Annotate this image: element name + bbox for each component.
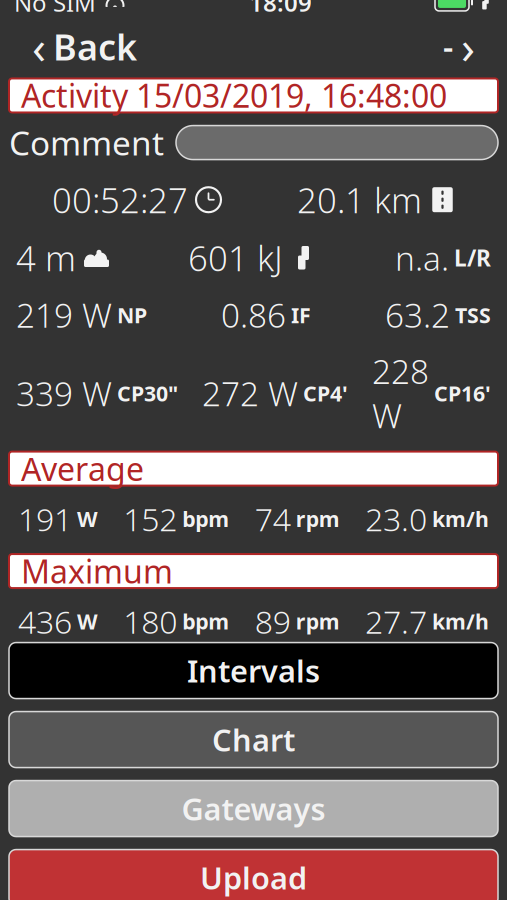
- staticText: ‹: [32, 16, 46, 76]
- staticText: 18:09: [249, 0, 312, 18]
- staticText: 74: [255, 498, 291, 540]
- staticText: 0.86: [221, 293, 286, 337]
- staticText: 27.7: [365, 600, 427, 643]
- staticText: Chart: [212, 719, 295, 760]
- staticText: 180: [123, 600, 177, 643]
- staticText: TSS: [455, 301, 491, 329]
- staticText: 339 W: [16, 371, 112, 415]
- staticText: -: [443, 25, 453, 68]
- button[interactable]: ‹: [22, 10, 147, 82]
- button[interactable]: Comment field: [176, 126, 498, 160]
- button[interactable]: Chart: [9, 712, 498, 768]
- staticText: CP16': [434, 379, 491, 407]
- staticText: IF: [291, 301, 311, 329]
- staticText: CP4': [303, 379, 348, 407]
- staticText: W: [77, 607, 98, 635]
- staticText: 191: [18, 498, 72, 540]
- staticText: Activity 15/03/2019, 16:48:00: [21, 74, 447, 117]
- button[interactable]: Gateways: [9, 781, 498, 837]
- staticText: Intervals: [187, 650, 320, 691]
- staticText: rpm: [296, 505, 340, 533]
- staticText: 228 W: [372, 349, 429, 437]
- staticText: km/h: [432, 607, 489, 635]
- staticText: 272 W: [202, 371, 298, 415]
- staticText: 63.2: [385, 293, 450, 337]
- staticText: 219 W: [16, 293, 112, 337]
- staticText: bpm: [182, 607, 229, 635]
- button[interactable]: Next activity: [433, 10, 485, 82]
- staticText: rpm: [296, 607, 340, 635]
- staticText: 89: [255, 600, 291, 643]
- staticText: No SIM: [14, 0, 96, 18]
- staticText: CP30": [117, 379, 178, 407]
- staticText: bpm: [182, 505, 229, 533]
- staticText: W: [77, 505, 98, 533]
- staticText: 23.0: [365, 498, 427, 540]
- staticText: L/R: [454, 243, 491, 273]
- staticText: Maximum: [21, 550, 173, 592]
- staticText: 601 kJ: [188, 235, 283, 281]
- staticText: NP: [117, 301, 147, 329]
- button[interactable]: Upload: [9, 850, 498, 900]
- staticText: 00:52:27: [52, 177, 188, 223]
- staticText: Comment: [9, 120, 164, 165]
- button[interactable]: Intervals: [9, 643, 498, 699]
- staticText: km/h: [432, 505, 489, 533]
- staticText: 20.1 km: [297, 177, 422, 223]
- staticText: 436: [18, 600, 72, 643]
- staticText: 152: [123, 498, 177, 540]
- staticText: Upload: [200, 857, 307, 898]
- staticText: Gateways: [181, 788, 325, 829]
- staticText: ›: [461, 16, 475, 76]
- staticText: Average: [21, 447, 144, 490]
- staticText: n.a.: [395, 236, 449, 280]
- staticText: 4 m: [16, 235, 76, 281]
- staticText: Back: [53, 22, 137, 70]
